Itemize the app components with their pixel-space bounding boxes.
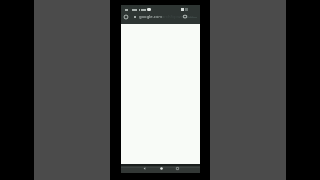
staticText: /search?q=weather [156, 14, 194, 20]
button[interactable]: Recents [173, 164, 181, 172]
button[interactable]: Tabs [181, 13, 188, 20]
button[interactable]: Home [157, 164, 165, 172]
button[interactable]: Home [122, 13, 129, 20]
staticText: google.com [139, 14, 163, 20]
button[interactable]: Back [140, 164, 148, 172]
